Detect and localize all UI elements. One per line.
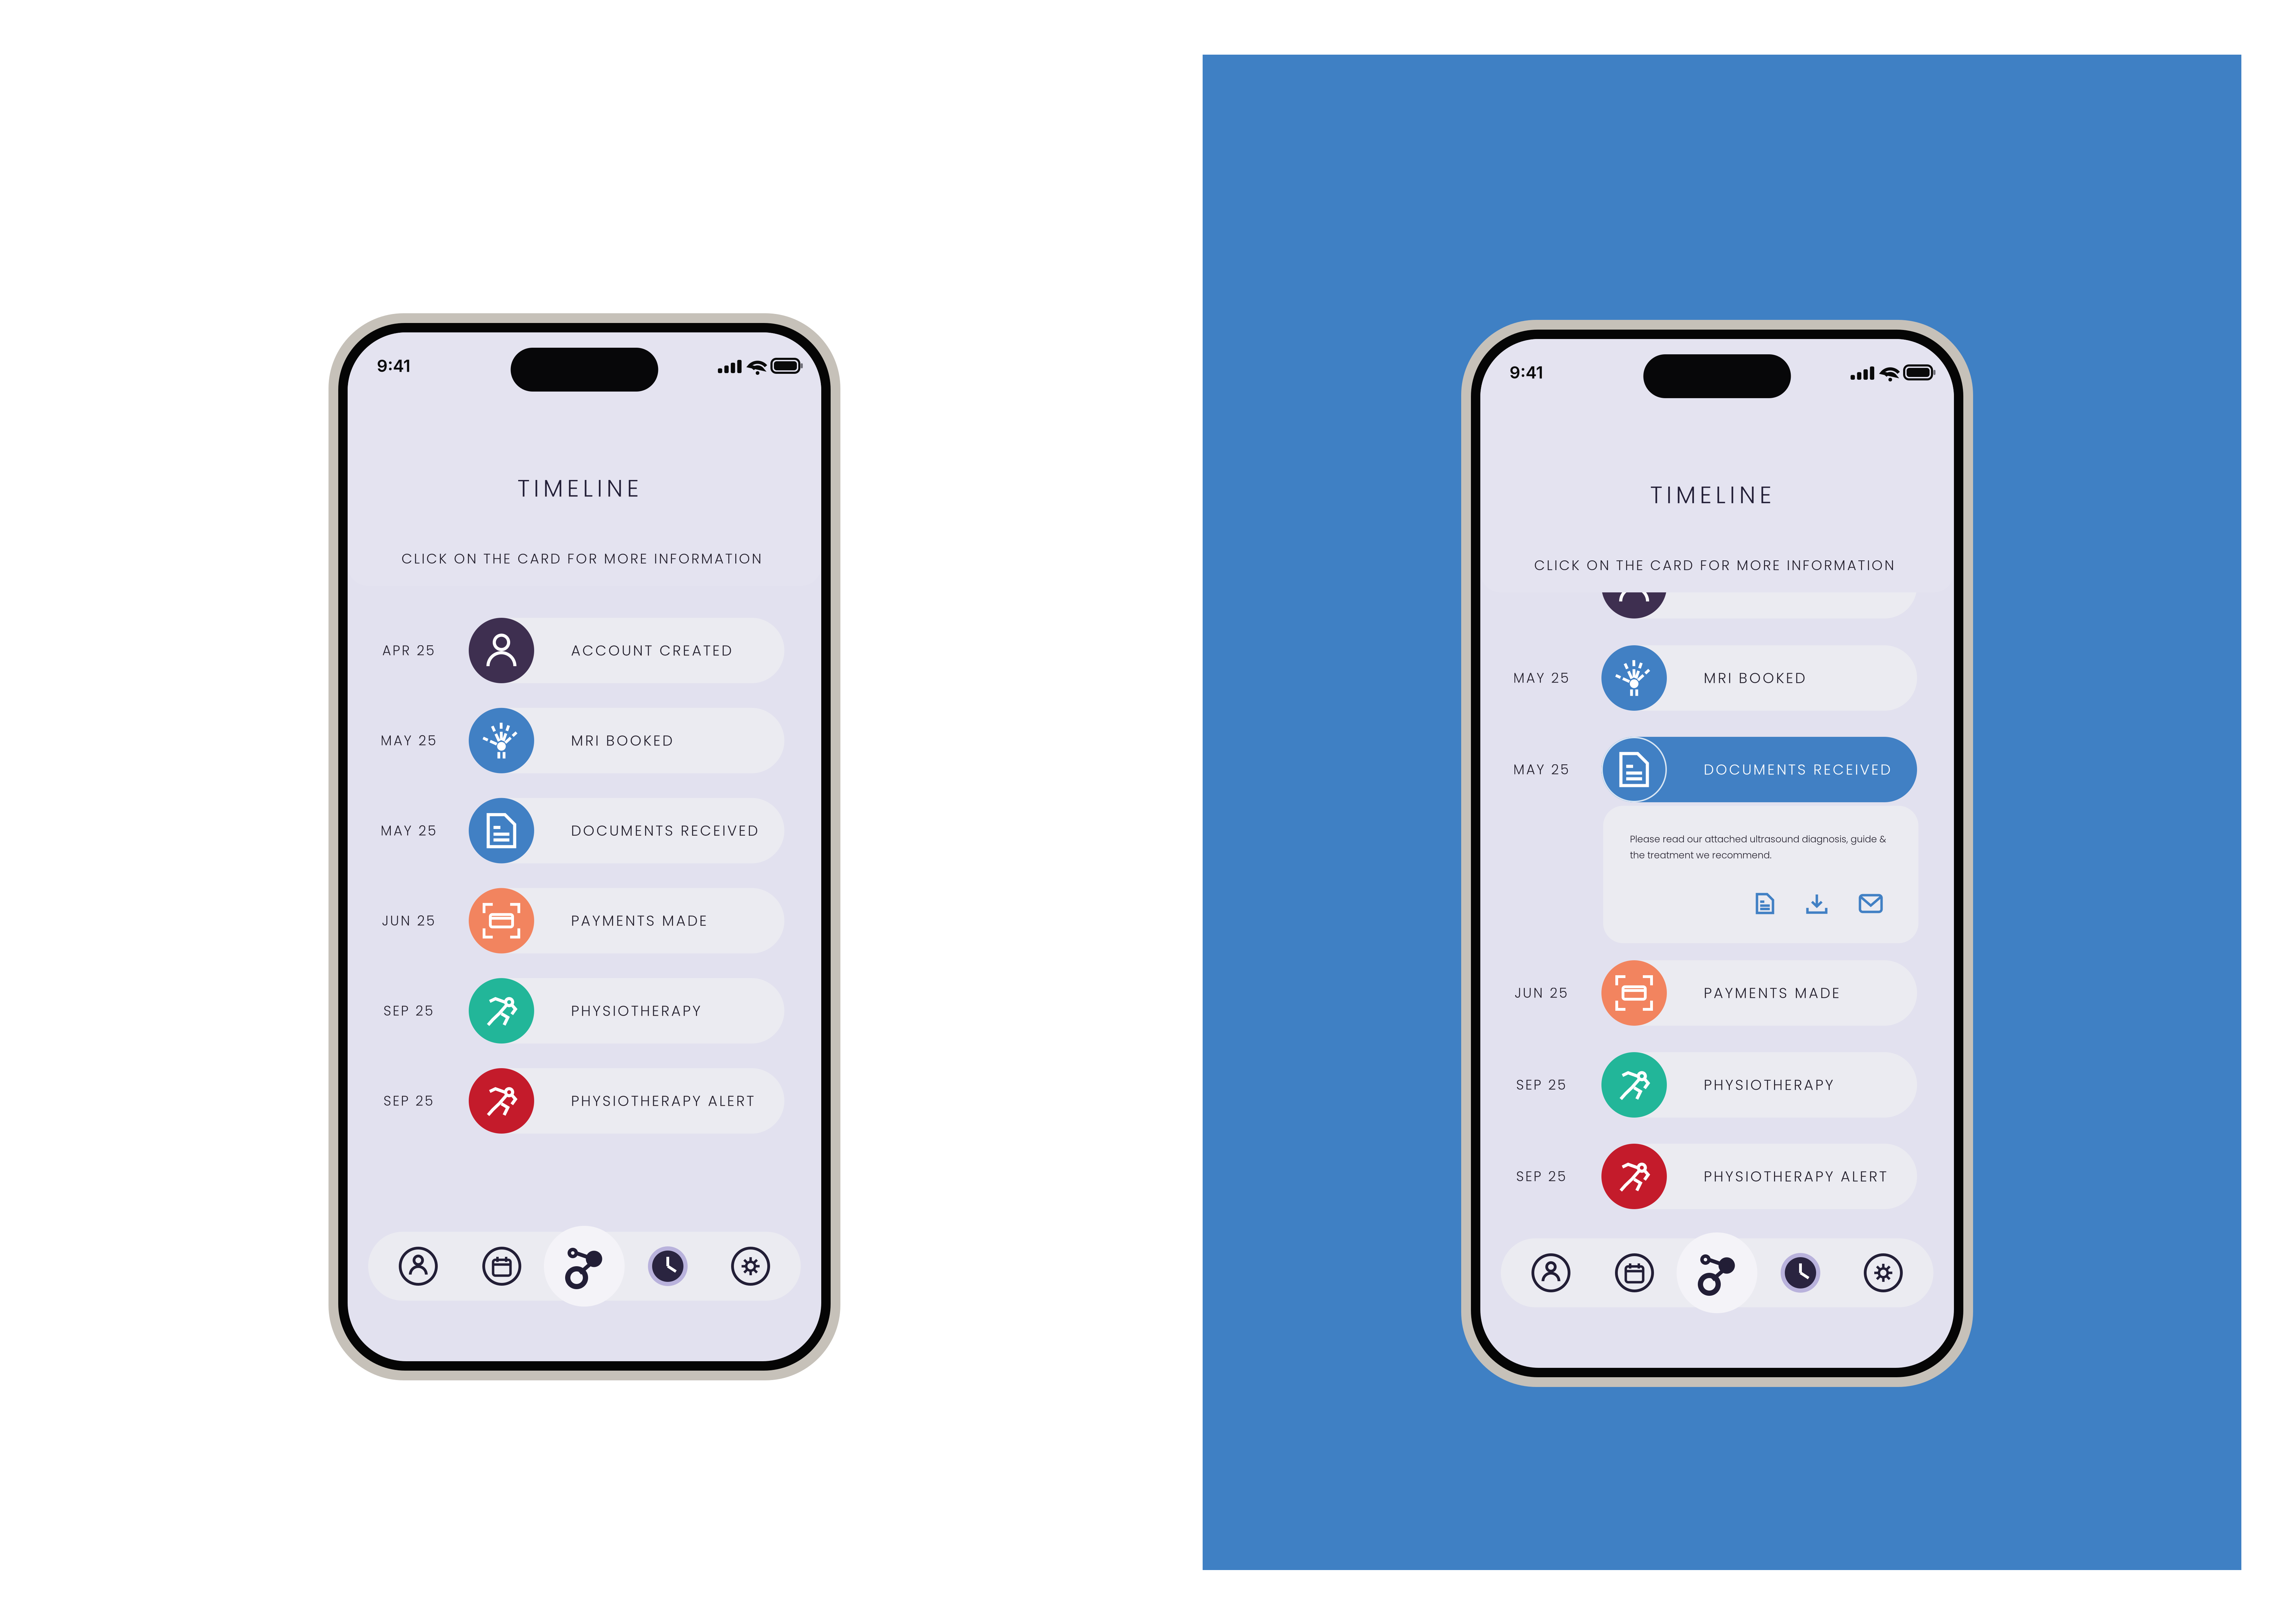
button[interactable]: Timeline <box>544 1226 625 1307</box>
staticText: SEP 25 <box>1516 1075 1574 1094</box>
button[interactable]: View document <box>1744 885 1786 922</box>
button[interactable]: Settings <box>1864 1253 1903 1292</box>
staticText: Please read our attached ultrasound diag… <box>1630 833 1886 846</box>
button[interactable]: SEP 25 <box>348 1068 821 1134</box>
button[interactable]: Timeline <box>1677 1232 1757 1313</box>
button[interactable]: History <box>1781 1253 1820 1293</box>
staticText: MAY 25 <box>381 821 444 840</box>
staticText: TIMELINE <box>1650 478 1787 511</box>
staticText: ACCOUNT CREATED <box>571 640 741 661</box>
button[interactable]: Profile <box>399 1247 438 1286</box>
staticText: PHYSIOTHERAPY <box>571 1001 710 1021</box>
staticText: SEP 25 <box>1516 1167 1574 1186</box>
staticText: MRI BOOKED <box>571 731 682 751</box>
button[interactable]: MAY 25 <box>1480 645 1954 711</box>
staticText: JUN 25 <box>1515 984 1575 1002</box>
staticText: DOCUMENTS RECEIVED <box>571 821 767 841</box>
button[interactable]: APR 25 <box>1480 553 1954 618</box>
button[interactable]: SEP 25 <box>1480 1144 1954 1209</box>
staticText: PHYSIOTHERAPY ALERT <box>1704 1166 1896 1187</box>
button[interactable]: MAY 25 <box>348 798 821 863</box>
staticText: PAYMENTS MADE <box>1704 983 1849 1003</box>
staticText: APR 25 <box>382 641 442 660</box>
staticText: MAY 25 <box>1513 760 1577 779</box>
staticText: MAY 25 <box>1513 669 1577 687</box>
staticText: MAY 25 <box>381 731 444 750</box>
staticText: SEP 25 <box>383 1001 441 1020</box>
button[interactable]: JUN 25 <box>348 888 821 953</box>
button[interactable]: MAY 25 <box>1480 737 1954 802</box>
staticText: CLICK ON THE CARD FOR MORE INFORMATION <box>402 549 770 568</box>
staticText: ACCOUNT CREATED <box>1704 576 1874 596</box>
button[interactable]: Download <box>1796 885 1837 922</box>
staticText: DOCUMENTS RECEIVED <box>1704 759 1900 780</box>
staticText: 9:41 <box>1510 362 1543 383</box>
staticText: SEP 25 <box>383 1091 441 1110</box>
button[interactable]: APR 25 <box>348 618 821 683</box>
button[interactable]: Calendar <box>1615 1253 1654 1292</box>
button[interactable]: MAY 25 <box>348 708 821 773</box>
button[interactable]: History <box>648 1246 688 1286</box>
staticText: CLICK ON THE CARD FOR MORE INFORMATION <box>1534 555 1902 575</box>
button[interactable]: SEP 25 <box>348 978 821 1044</box>
button[interactable]: Profile <box>1531 1253 1570 1292</box>
staticText: PAYMENTS MADE <box>571 911 716 931</box>
staticText: the treatment we recommend. <box>1630 849 1772 862</box>
button[interactable]: JUN 25 <box>1480 960 1954 1026</box>
button[interactable]: Settings <box>731 1247 770 1286</box>
staticText: 9:41 <box>377 356 410 376</box>
button[interactable]: Calendar <box>482 1247 521 1286</box>
staticText: JUN 25 <box>382 911 443 930</box>
staticText: PHYSIOTHERAPY <box>1704 1075 1842 1095</box>
staticText: MRI BOOKED <box>1704 668 1814 688</box>
button[interactable]: SEP 25 <box>1480 1052 1954 1118</box>
staticText: TIMELINE <box>517 472 655 505</box>
staticText: PHYSIOTHERAPY ALERT <box>571 1091 763 1111</box>
button[interactable]: Email <box>1850 885 1891 922</box>
